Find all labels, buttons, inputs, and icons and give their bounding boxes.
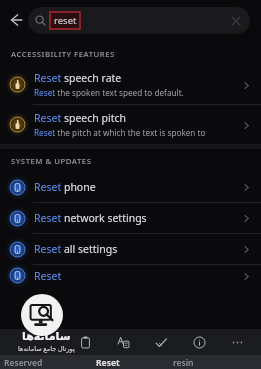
button[interactable]: Reset all settings	[0, 234, 261, 264]
button[interactable]: Reset phone	[0, 172, 261, 202]
button[interactable]: Reset speech rate	[0, 65, 261, 104]
staticText: Reset network settings	[34, 211, 147, 225]
button[interactable]: Reset network settings	[0, 203, 261, 233]
staticText: ACCESSIBILITY FEATURES	[11, 49, 115, 60]
button[interactable]: More options	[218, 329, 256, 355]
staticText: Reset all settings	[34, 242, 118, 256]
button[interactable]: Info	[180, 329, 218, 355]
staticText: Reset phone	[34, 180, 96, 194]
button[interactable]: Clear search	[226, 11, 246, 31]
button[interactable]: Reset	[0, 265, 261, 286]
button[interactable]: Reset speech pitch	[0, 105, 261, 144]
staticText: SYSTEM & UPDATES	[11, 156, 92, 167]
staticText: سامانه‌ها	[22, 330, 71, 343]
button[interactable]: Edit	[142, 329, 180, 355]
staticText: Reset speech rate	[34, 71, 122, 85]
staticText: resin	[173, 357, 194, 369]
staticText: Reset the pitch at which the text is spo…	[34, 127, 235, 138]
staticText: Reset	[34, 269, 62, 283]
button[interactable]: Clipboard	[66, 329, 104, 355]
button[interactable]: Back	[3, 7, 29, 33]
staticText: Reset speech pitch	[34, 111, 127, 125]
button[interactable]: reset	[28, 7, 250, 34]
staticText: پورتال جامع سامانه‌ها	[18, 344, 75, 353]
staticText: Reserved	[4, 357, 43, 369]
staticText: Reset	[96, 357, 120, 369]
staticText: Reset the spoken text speed to default.	[34, 87, 184, 98]
staticText: reset	[54, 14, 77, 27]
button[interactable]: Translate	[104, 329, 142, 355]
